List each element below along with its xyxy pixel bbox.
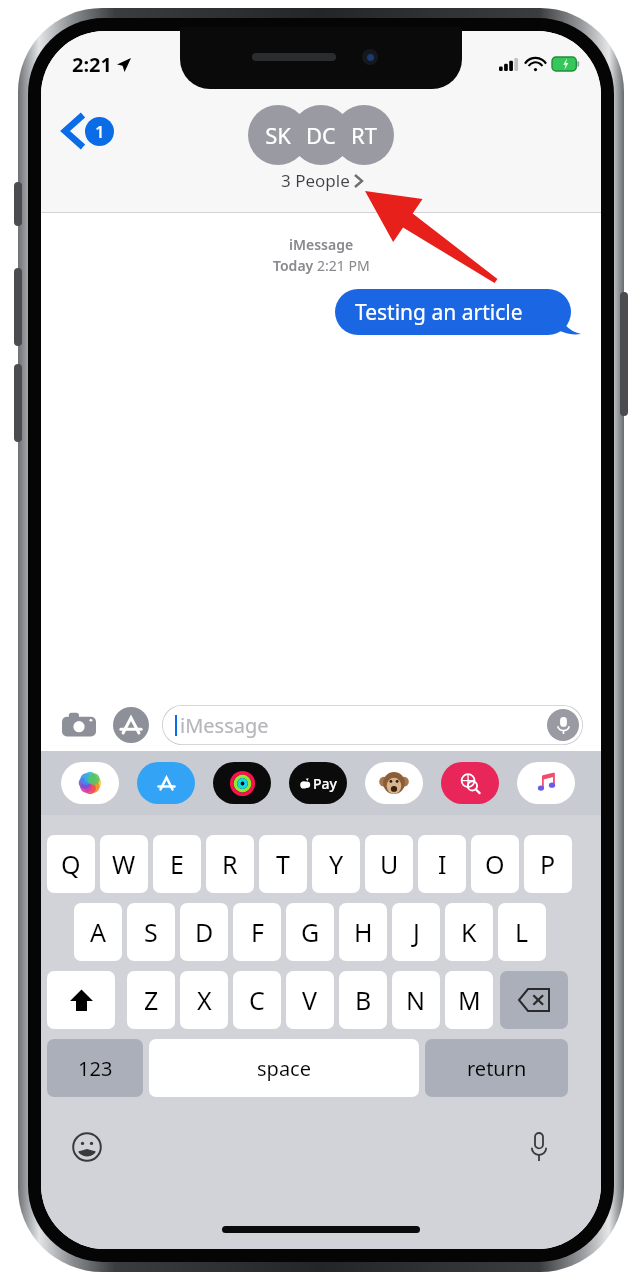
- staticText: G: [301, 915, 320, 949]
- staticText: F: [251, 915, 264, 949]
- button[interactable]: iMessage app 2: [135, 761, 197, 805]
- button[interactable]: App Store: [111, 705, 151, 745]
- staticText: Q: [61, 847, 81, 881]
- button[interactable]: H: [339, 903, 387, 961]
- button[interactable]: S: [127, 903, 175, 961]
- staticText: B: [355, 983, 372, 1017]
- staticText: M: [458, 983, 481, 1017]
- button[interactable]: Dictation: [517, 1125, 561, 1169]
- staticText: S: [144, 915, 158, 949]
- button[interactable]: N: [392, 971, 440, 1029]
- button[interactable]: J: [392, 903, 440, 961]
- button[interactable]: iMessage app 1: [59, 761, 121, 805]
- staticText: V: [302, 983, 318, 1017]
- staticText: Today: [273, 256, 317, 275]
- button[interactable]: A: [74, 903, 122, 961]
- button[interactable]: Shift: [47, 971, 115, 1029]
- staticText: Pay: [313, 774, 337, 793]
- button[interactable]: 123: [47, 1039, 143, 1097]
- staticText: N: [406, 983, 426, 1017]
- staticText: U: [380, 847, 399, 881]
- button[interactable]: SK: [41, 105, 601, 192]
- button[interactable]: Back, 1 unread: [59, 109, 120, 153]
- staticText: A: [90, 915, 106, 949]
- button[interactable]: V: [286, 971, 334, 1029]
- button[interactable]: iMessage: [162, 705, 583, 745]
- button[interactable]: space: [149, 1039, 419, 1097]
- staticText: iMessage: [180, 712, 269, 739]
- button[interactable]: Camera: [59, 705, 99, 745]
- button[interactable]: P: [524, 835, 572, 893]
- button[interactable]: E: [153, 835, 201, 893]
- staticText: 3 People: [281, 169, 350, 192]
- button[interactable]: Y: [312, 835, 360, 893]
- button[interactable]: iMessage app 3: [211, 761, 273, 805]
- button[interactable]: L: [498, 903, 546, 961]
- button[interactable]: C: [233, 971, 281, 1029]
- button[interactable]: K: [445, 903, 493, 961]
- staticText: H: [354, 915, 373, 949]
- button[interactable]: F: [233, 903, 281, 961]
- staticText: DC: [306, 120, 336, 150]
- button[interactable]: G: [286, 903, 334, 961]
- staticText: 123: [78, 1055, 113, 1082]
- staticText: 2:21: [72, 51, 112, 78]
- staticText: L: [515, 915, 529, 949]
- button[interactable]: T: [259, 835, 307, 893]
- button[interactable]: Emoji keyboard: [65, 1125, 109, 1169]
- button[interactable]: Backspace: [500, 971, 568, 1029]
- button[interactable]: iMessage app 5: [363, 761, 425, 805]
- staticText: SK: [265, 120, 291, 150]
- button[interactable]: X: [180, 971, 228, 1029]
- staticText: RT: [351, 120, 377, 150]
- button[interactable]: iMessage app 4: [287, 761, 349, 805]
- button[interactable]: Q: [47, 835, 95, 893]
- staticText: X: [197, 983, 212, 1017]
- button[interactable]: O: [471, 835, 519, 893]
- staticText: I: [438, 847, 447, 881]
- staticText: 1: [95, 120, 105, 143]
- staticText: T: [276, 847, 290, 881]
- staticText: D: [195, 915, 214, 949]
- staticText: return: [467, 1055, 527, 1082]
- button[interactable]: Z: [127, 971, 175, 1029]
- button[interactable]: return: [425, 1039, 568, 1097]
- button[interactable]: W: [100, 835, 148, 893]
- staticText: space: [257, 1055, 311, 1082]
- staticText: Z: [144, 983, 159, 1017]
- staticText: K: [461, 915, 477, 949]
- staticText: Testing an article: [355, 298, 523, 327]
- button[interactable]: B: [339, 971, 387, 1029]
- button[interactable]: R: [206, 835, 254, 893]
- button[interactable]: I: [418, 835, 466, 893]
- button[interactable]: D: [180, 903, 228, 961]
- button[interactable]: M: [445, 971, 493, 1029]
- staticText: J: [413, 915, 420, 949]
- button[interactable]: iMessage app 6: [439, 761, 501, 805]
- button[interactable]: U: [365, 835, 413, 893]
- staticText: C: [249, 983, 265, 1017]
- staticText: 2:21 PM: [317, 256, 370, 275]
- button[interactable]: iMessage app 7: [515, 761, 577, 805]
- staticText: E: [170, 847, 184, 881]
- staticText: Y: [329, 847, 344, 881]
- staticText: R: [222, 847, 238, 881]
- staticText: iMessage: [289, 235, 354, 254]
- staticText: O: [485, 847, 505, 881]
- button[interactable]: Dictate: [547, 709, 579, 741]
- staticText: W: [112, 847, 136, 881]
- staticText: P: [540, 847, 556, 881]
